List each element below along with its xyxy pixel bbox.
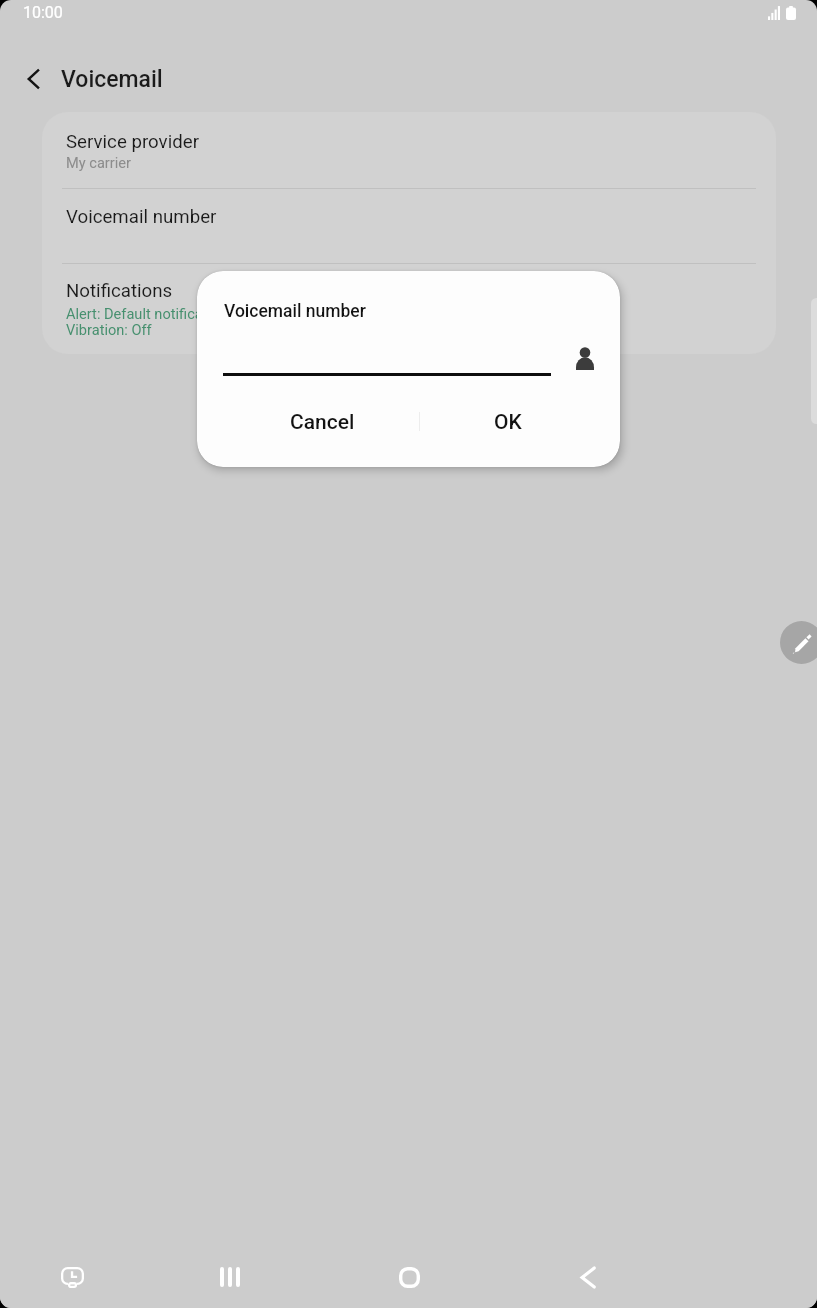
button[interactable]: Voicemail number — [42, 188, 776, 263]
staticText: 10:00 — [23, 3, 63, 22]
staticText: Service provider — [66, 131, 199, 153]
staticText: Notifications — [66, 280, 173, 302]
button[interactable]: Screen timeout — [48, 1246, 96, 1308]
button[interactable]: Home — [385, 1246, 433, 1308]
staticText: Voicemail number — [224, 301, 366, 322]
staticText: Voicemail number — [66, 206, 217, 228]
staticText: Vibration: Off — [66, 321, 152, 338]
button[interactable]: Service provider — [42, 112, 776, 188]
button[interactable]: Navigate up — [10, 55, 58, 103]
staticText: My carrier — [66, 154, 131, 171]
button[interactable]: Cancel — [230, 398, 415, 446]
staticText: Voicemail — [61, 66, 163, 93]
other: Choose contact — [576, 347, 594, 370]
button[interactable]: Back — [564, 1246, 612, 1308]
button[interactable]: Recent apps — [206, 1246, 254, 1308]
staticText: Cancel — [290, 410, 355, 435]
button[interactable]: OK — [415, 398, 601, 446]
staticText: Alert: Default notification sound — [66, 305, 272, 322]
button[interactable]: Notifications — [42, 264, 776, 354]
staticText: OK — [494, 410, 522, 435]
button[interactable]: Edit — [780, 621, 817, 664]
